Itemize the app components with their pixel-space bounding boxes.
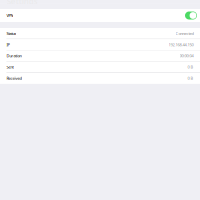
button[interactable]: VPN — [0, 9, 200, 22]
staticText: 00:00:04 — [180, 53, 194, 58]
button[interactable]: Sent — [0, 62, 200, 72]
button[interactable]: Received — [0, 73, 200, 84]
staticText: Status — [6, 31, 16, 36]
staticText: Duration — [6, 53, 21, 58]
button[interactable]: IP — [0, 39, 200, 50]
staticText: 0 B — [188, 75, 194, 81]
staticText: 192.168.44.150 — [169, 42, 194, 47]
staticText: VPN — [6, 13, 13, 18]
staticText: Connected — [176, 31, 194, 36]
staticText: Received — [6, 75, 21, 81]
staticText: IP — [6, 42, 9, 47]
button[interactable]: Status — [0, 28, 200, 39]
staticText: Sent — [6, 64, 13, 70]
staticText: 0 B — [188, 64, 194, 70]
button[interactable]: Duration — [0, 50, 200, 61]
